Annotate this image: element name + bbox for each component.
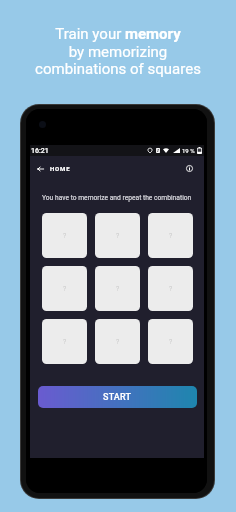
button[interactable]: Memory tile xyxy=(148,213,193,258)
staticText: ? xyxy=(63,338,67,346)
button[interactable]: Memory tile xyxy=(148,266,193,311)
staticText: You have to memorize and repeat the comb… xyxy=(42,194,192,202)
button[interactable]: Memory tile xyxy=(42,213,87,258)
staticText: ? xyxy=(116,232,120,240)
staticText: HOME xyxy=(50,165,71,172)
staticText: 16:21 xyxy=(31,147,49,155)
staticText: ? xyxy=(169,338,173,346)
button[interactable]: Memory tile xyxy=(95,213,140,258)
button[interactable]: Memory tile xyxy=(148,319,193,364)
staticText: ? xyxy=(169,285,173,293)
staticText: START xyxy=(103,392,132,403)
staticText: ? xyxy=(63,285,67,293)
staticText: Train your memory by memorizing combinat… xyxy=(0,25,236,77)
button[interactable]: Memory tile xyxy=(42,266,87,311)
button[interactable]: Memory tile xyxy=(95,266,140,311)
button[interactable]: START xyxy=(38,386,197,408)
staticText: ? xyxy=(116,285,120,293)
staticText: ? xyxy=(116,338,120,346)
button[interactable]: Info xyxy=(183,162,196,175)
button[interactable]: Memory tile xyxy=(95,319,140,364)
button[interactable]: Memory tile xyxy=(42,319,87,364)
button[interactable]: Back xyxy=(34,162,47,175)
staticText: ? xyxy=(169,232,173,240)
staticText: ? xyxy=(63,232,67,240)
staticText: 19 % xyxy=(182,147,195,154)
